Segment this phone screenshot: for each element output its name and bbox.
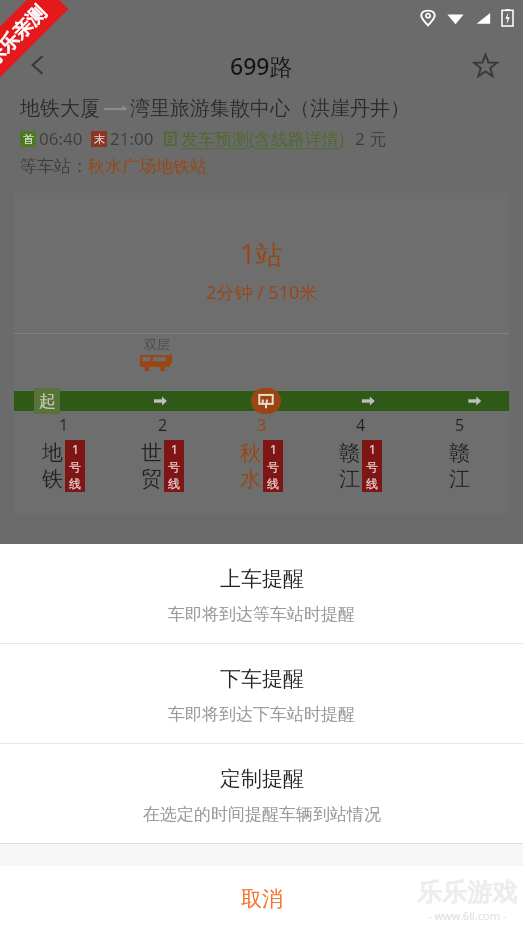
staticText: 号 (168, 459, 180, 474)
staticText: 赣 (339, 440, 360, 466)
button[interactable]: 1站 (14, 193, 509, 514)
staticText: 2 元 (355, 127, 387, 150)
staticText: 贸 (141, 466, 162, 492)
staticText: 号 (69, 459, 81, 474)
staticText: 线 (366, 476, 378, 491)
button[interactable]: 2 (113, 414, 212, 514)
staticText: 06:40 (39, 127, 83, 150)
staticText: 乐乐游戏 (417, 877, 517, 908)
staticText: 江 (339, 466, 360, 492)
staticText: 1 (369, 441, 376, 457)
button[interactable]: Back (16, 43, 60, 87)
staticText: 号 (267, 459, 279, 474)
staticText: 末 (94, 132, 105, 146)
staticText: 1 (72, 441, 79, 457)
staticText: - www.6ll.com - (428, 908, 507, 923)
staticText: 双层 (144, 336, 170, 352)
staticText: 等车站： (20, 156, 88, 177)
staticText: 水 (240, 466, 261, 492)
staticText: 地 (42, 440, 63, 466)
staticText: 2分钟 / 510米 (206, 280, 318, 305)
button[interactable]: 1 (14, 414, 113, 514)
staticText: 发车预测(含线路详情) (181, 127, 345, 150)
staticText: 起 (39, 391, 56, 412)
staticText: 1站 (240, 235, 283, 272)
staticText: 乐乐亲测 (0, 1, 51, 71)
staticText: 2 (158, 414, 168, 436)
staticText: 线 (69, 476, 81, 491)
staticText: 下车提醒 (220, 666, 304, 692)
button[interactable]: 4 (311, 414, 410, 514)
button[interactable]: 上车提醒 (0, 544, 523, 643)
staticText: 21:00 (110, 127, 154, 150)
staticText: 699路 (230, 50, 293, 81)
staticText: 秋 (240, 440, 261, 466)
staticText: 赣 (449, 440, 470, 466)
button[interactable]: 取消 (0, 866, 523, 931)
staticText: 车即将到达下车站时提醒 (168, 704, 355, 725)
button[interactable]: 定制提醒 (0, 744, 523, 843)
button[interactable]: 发车预测(含线路详情) (163, 127, 345, 150)
staticText: 3 (257, 414, 267, 436)
staticText: 1 (171, 441, 178, 457)
button[interactable]: Favorite (463, 43, 507, 87)
staticText: 湾里旅游集散中心（洪崖丹井） (130, 96, 410, 121)
staticText: 江 (449, 466, 470, 492)
staticText: 取消 (241, 886, 283, 912)
button[interactable]: 下车提醒 (0, 644, 523, 743)
staticText: 1 (270, 441, 277, 457)
staticText: 上车提醒 (220, 566, 304, 592)
staticText: 在选定的时间提醒车辆到站情况 (143, 804, 381, 825)
staticText: 4 (356, 414, 366, 436)
staticText: 5 (455, 414, 465, 436)
button[interactable]: 5 (410, 414, 509, 514)
staticText: 地铁大厦 (20, 96, 100, 121)
staticText: 世 (141, 440, 162, 466)
staticText: 秋水广场地铁站 (88, 156, 207, 177)
staticText: 铁 (42, 466, 63, 492)
staticText: 1 (59, 414, 69, 436)
staticText: 号 (366, 459, 378, 474)
staticText: 定制提醒 (220, 766, 304, 792)
staticText: 线 (267, 476, 279, 491)
staticText: 线 (168, 476, 180, 491)
staticText: 车即将到达等车站时提醒 (168, 604, 355, 625)
button[interactable]: 3 (212, 414, 311, 514)
staticText: 首 (23, 132, 34, 146)
